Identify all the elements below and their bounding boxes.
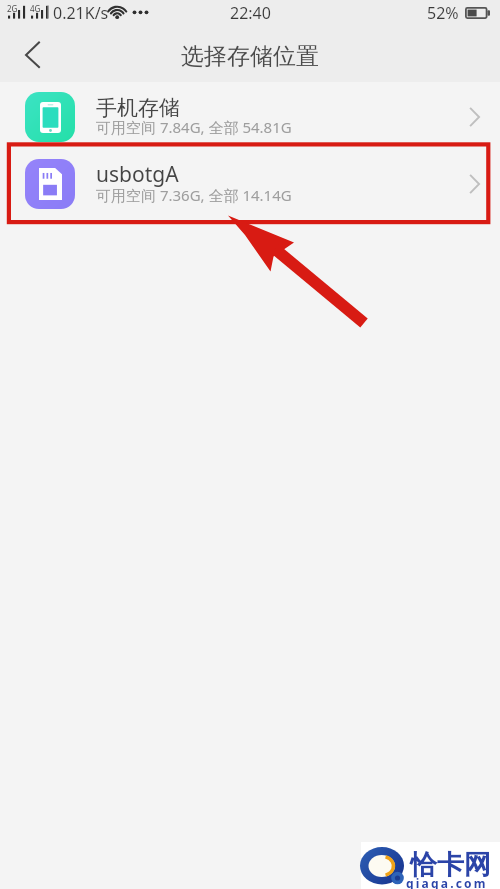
staticText: 22:40: [230, 2, 271, 24]
staticText: 0.21K/s: [53, 2, 109, 24]
staticText: 恰卡网: [410, 848, 491, 882]
staticText: 2G: [7, 3, 18, 14]
button[interactable]: Back: [0, 30, 56, 82]
staticText: 可用空间 7.84G, 全部 54.81G: [96, 117, 292, 137]
button[interactable]: 手机存储: [0, 83, 500, 150]
staticText: usbotgA: [96, 160, 179, 189]
staticText: 52%: [427, 2, 459, 24]
button[interactable]: usbotgA: [0, 150, 500, 217]
staticText: qiaqa.com: [406, 875, 488, 889]
staticText: 手机存储: [96, 95, 180, 121]
staticText: 选择存储位置: [181, 42, 319, 71]
staticText: 可用空间 7.36G, 全部 14.14G: [96, 185, 292, 205]
staticText: 4G: [30, 3, 41, 14]
